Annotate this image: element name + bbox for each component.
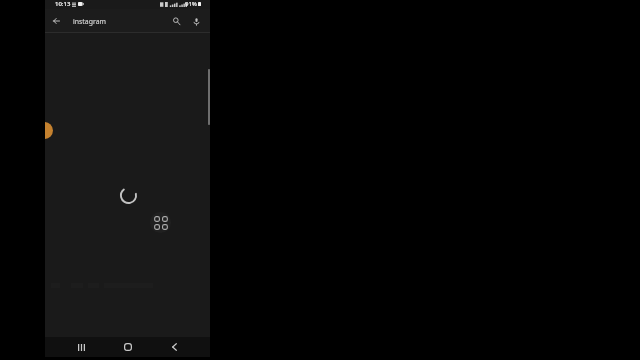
button[interactable]: Floating bubble: [45, 122, 53, 139]
button[interactable]: Search: [166, 10, 187, 33]
button[interactable]: Home: [116, 337, 140, 357]
staticText: 10:13: [55, 0, 71, 8]
staticText: 91%: [185, 0, 197, 8]
button[interactable]: Voice search: [186, 10, 207, 33]
button[interactable]: Back: [45, 9, 67, 32]
button[interactable]: Apps grid: [150, 212, 171, 233]
button[interactable]: Back: [162, 337, 186, 357]
staticText: instagram: [73, 17, 106, 26]
button[interactable]: Recent apps: [69, 337, 93, 357]
